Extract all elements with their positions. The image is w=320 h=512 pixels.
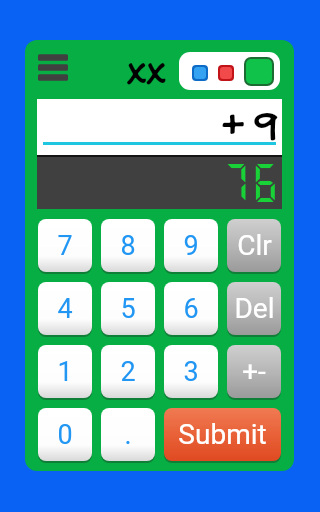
button[interactable]: 4 [38, 282, 92, 335]
staticText: 3 [183, 356, 199, 388]
button[interactable]: . [101, 408, 155, 461]
staticText: Clr [237, 229, 272, 262]
staticText: Del [234, 292, 275, 325]
staticText: 6 [183, 293, 199, 325]
staticText: xx [127, 51, 166, 103]
staticText: 7 [57, 230, 73, 262]
button[interactable]: Submit [164, 408, 281, 461]
button[interactable]: 1 [38, 345, 92, 398]
button[interactable]: Del [227, 282, 281, 335]
button[interactable]: xx [127, 51, 174, 103]
staticText: 5 [120, 293, 136, 325]
staticText: 4 [57, 293, 73, 325]
button[interactable]: 3 [164, 345, 218, 398]
button[interactable]: 5 [101, 282, 155, 335]
staticText: 8 [120, 230, 136, 262]
staticText: +- [242, 355, 266, 388]
button[interactable]: 0 [38, 408, 92, 461]
button[interactable]: Green [246, 59, 272, 84]
staticText: + 9 [222, 101, 279, 155]
button[interactable]: Red [220, 67, 232, 79]
staticText: 1 [57, 356, 73, 388]
button[interactable]: 9 [164, 219, 218, 272]
staticText: 9 [183, 230, 199, 262]
button[interactable]: 6 [164, 282, 218, 335]
button[interactable]: Blue [194, 67, 206, 79]
button[interactable]: 7 [38, 219, 92, 272]
button[interactable]: 2 [101, 345, 155, 398]
staticText: 76 [221, 158, 281, 206]
button[interactable]: Clr [227, 219, 281, 272]
button[interactable]: 8 [101, 219, 155, 272]
button[interactable]: +- [227, 345, 281, 398]
staticText: 0 [57, 419, 73, 451]
staticText: . [124, 419, 132, 451]
button[interactable]: Menu [36, 52, 70, 83]
staticText: 2 [120, 356, 136, 388]
staticText: Submit [178, 418, 267, 451]
